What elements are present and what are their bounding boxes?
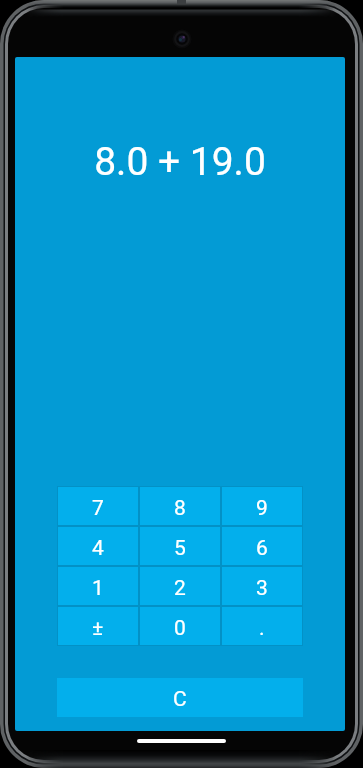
button[interactable]: . xyxy=(222,607,302,645)
staticText: 6 xyxy=(256,536,268,561)
staticText: 0 xyxy=(174,616,186,641)
staticText: 1 xyxy=(92,576,104,601)
button[interactable]: 2 xyxy=(140,567,220,605)
button[interactable]: 4 xyxy=(58,527,138,565)
button[interactable]: C xyxy=(57,678,303,717)
staticText: 4 xyxy=(92,536,104,561)
button[interactable]: 1 xyxy=(58,567,138,605)
button[interactable]: 6 xyxy=(222,527,302,565)
button[interactable]: 8 xyxy=(140,487,220,525)
staticText: 3 xyxy=(256,576,268,601)
staticText: C xyxy=(173,687,187,712)
staticText: 5 xyxy=(174,536,186,561)
button[interactable]: 7 xyxy=(58,487,138,525)
button[interactable]: 3 xyxy=(222,567,302,605)
other: Front camera xyxy=(170,27,194,51)
button[interactable]: 5 xyxy=(140,527,220,565)
button[interactable]: 9 xyxy=(222,487,302,525)
button[interactable]: ± xyxy=(58,607,138,645)
staticText: 8 xyxy=(174,496,186,521)
staticText: 2 xyxy=(174,576,186,601)
button[interactable]: 0 xyxy=(140,607,220,645)
staticText: 7 xyxy=(92,496,104,521)
staticText: . xyxy=(259,616,265,641)
staticText: 9 xyxy=(256,496,268,521)
staticText: 8.0 + 19.0 xyxy=(15,139,345,185)
staticText: ± xyxy=(92,616,104,641)
